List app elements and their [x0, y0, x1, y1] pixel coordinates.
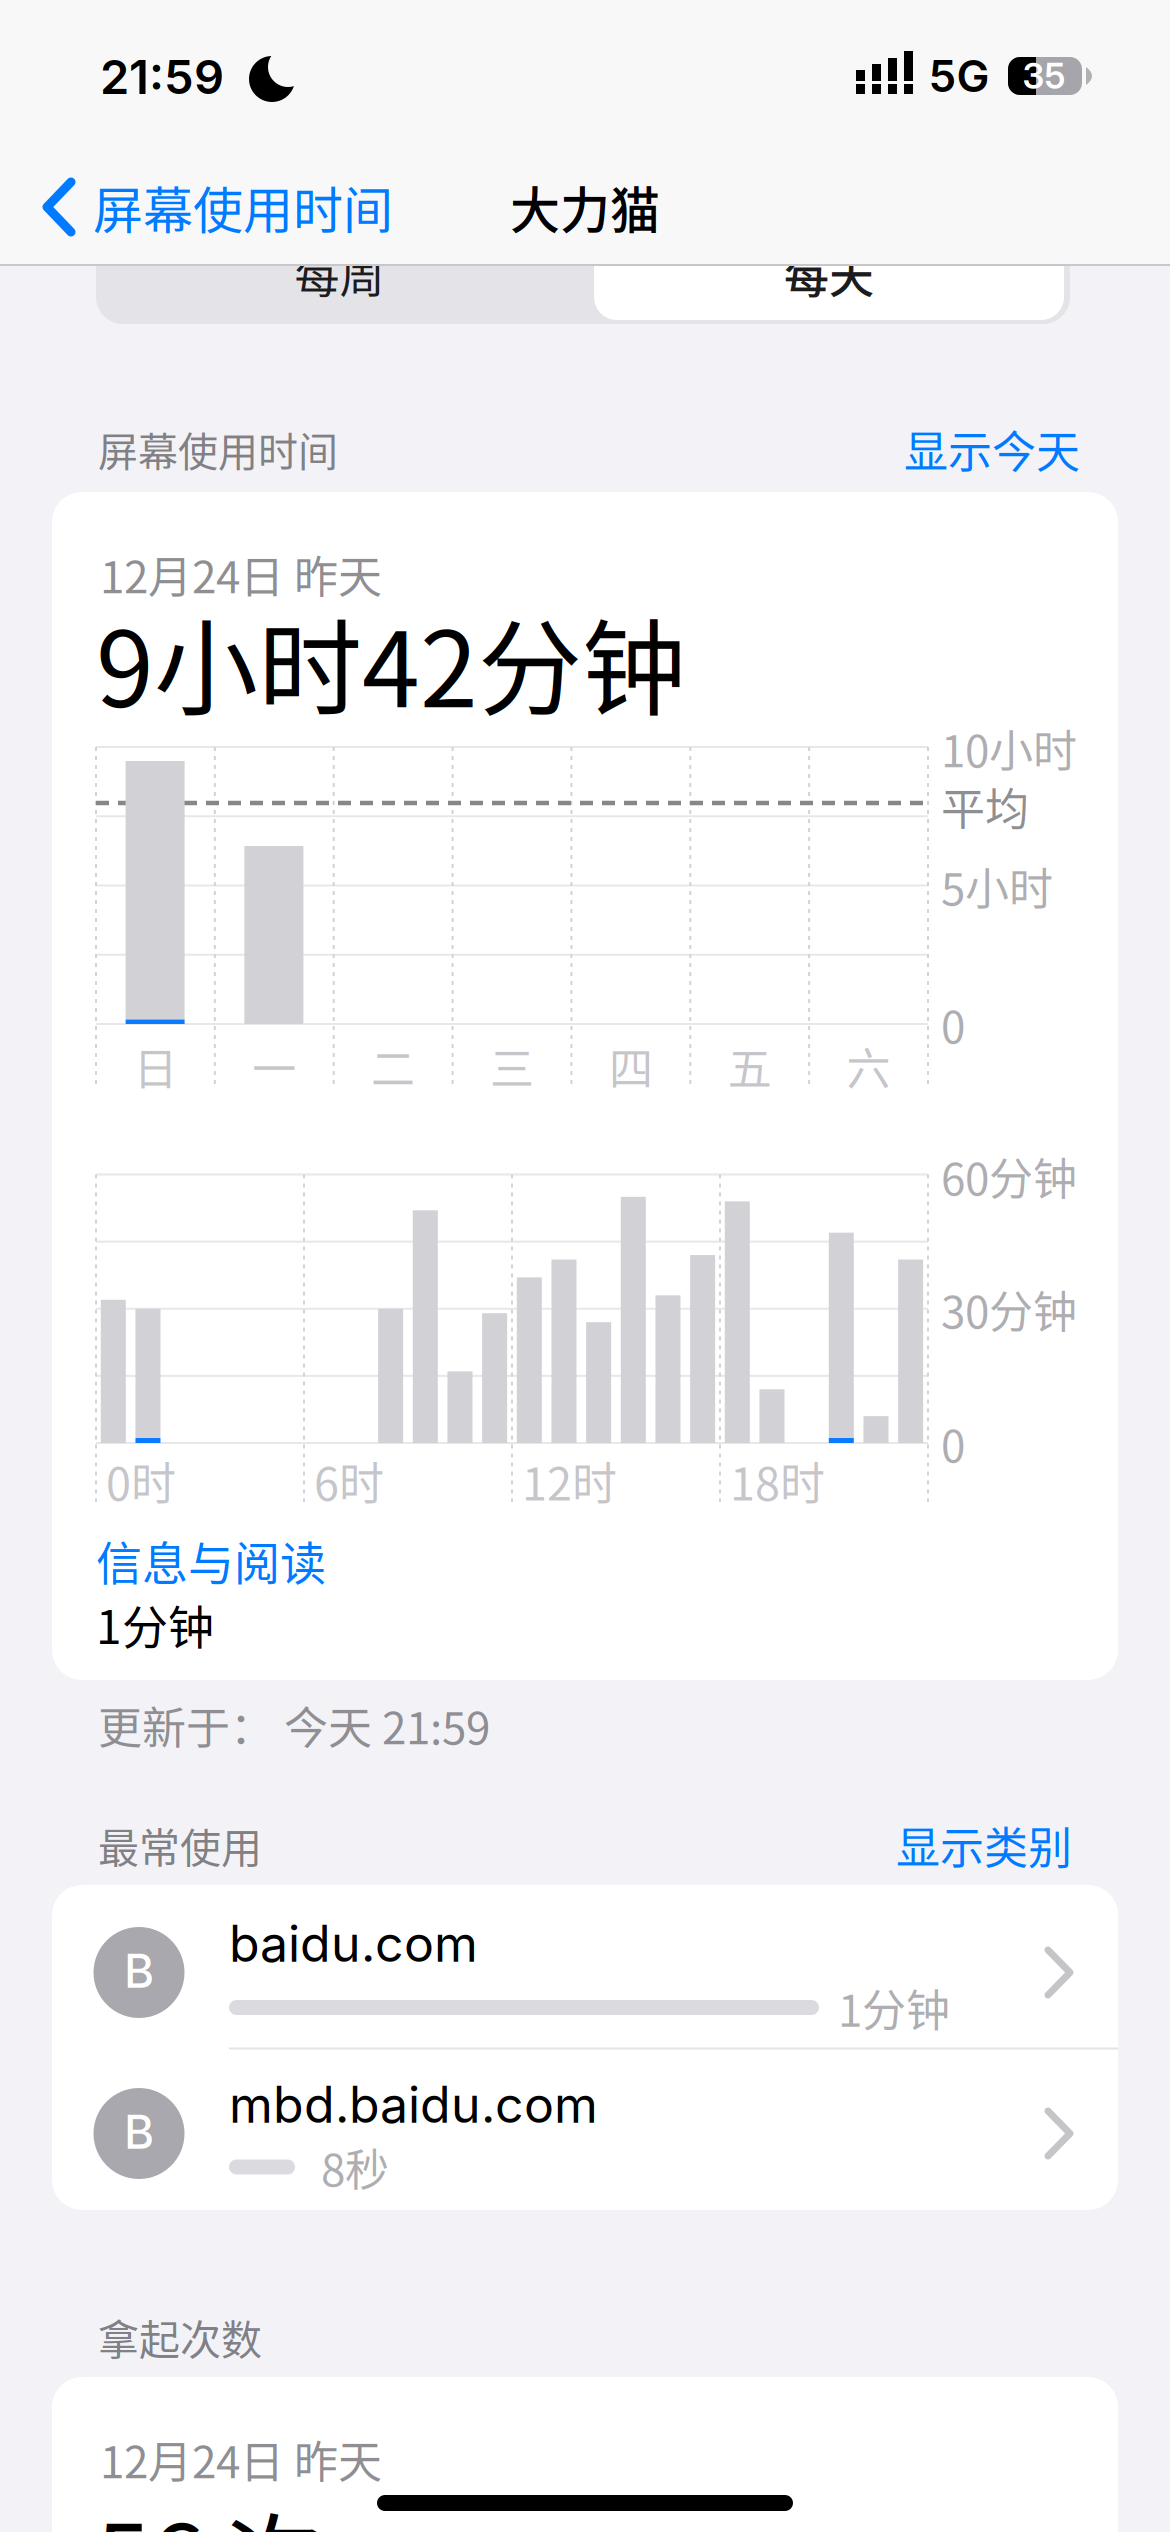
staticText: 12月24日 昨天 [100, 542, 382, 606]
staticText: 屏幕使用时间 [93, 171, 393, 243]
staticText: 0 [941, 1411, 965, 1475]
staticText: 9小时42分钟 [96, 587, 686, 737]
staticText: 大力猫 [510, 171, 660, 243]
button[interactable]: 每周 [96, 224, 583, 324]
staticText: 最常使用 [98, 1815, 262, 1875]
staticText: 二 [371, 1034, 415, 1098]
staticText: 1分钟 [96, 1591, 214, 1657]
staticText: 每周 [294, 241, 384, 307]
staticText: 5G [928, 49, 989, 103]
staticText: 30分钟 [941, 1277, 1077, 1341]
staticText: 更新于： 今天 21:59 [98, 1693, 490, 1757]
staticText: baidu.com [229, 1913, 478, 1974]
button[interactable]: 显示今天 [904, 417, 1080, 481]
staticText: 一 [252, 1034, 296, 1098]
staticText: 0 [941, 992, 965, 1056]
staticText: 六 [847, 1034, 891, 1098]
staticText: 56 次 [96, 2482, 324, 2532]
staticText: 1分钟 [838, 1976, 950, 2039]
staticText: 显示类别 [896, 1813, 1072, 1877]
staticText: 8秒 [321, 2135, 389, 2199]
staticText: 四 [609, 1034, 653, 1098]
staticText: 三 [490, 1034, 534, 1098]
staticText: 10小时 [941, 716, 1077, 780]
staticText: B [124, 1943, 154, 1999]
staticText: 日 [133, 1034, 177, 1098]
staticText: 平均 [941, 774, 1029, 838]
staticText: 12时 [522, 1448, 617, 1514]
button[interactable]: 屏幕使用时间 [45, 171, 393, 243]
staticText: 21:59 [100, 49, 224, 105]
staticText: 35 [1022, 55, 1065, 97]
button[interactable]: B [52, 2049, 1118, 2210]
staticText: 信息与阅读 [96, 1527, 326, 1593]
staticText: 屏幕使用时间 [98, 420, 338, 478]
staticText: 12月24日 昨天 [100, 2427, 382, 2491]
button[interactable]: 显示类别 [896, 1813, 1072, 1877]
staticText: 5小时 [941, 854, 1053, 918]
staticText: B [124, 2104, 154, 2160]
staticText: 60分钟 [941, 1144, 1077, 1208]
staticText: 6时 [314, 1448, 384, 1514]
staticText: 五 [728, 1034, 772, 1098]
staticText: mbd.baidu.com [229, 2074, 598, 2135]
button[interactable]: B [52, 1885, 1118, 2048]
staticText: 0时 [106, 1448, 176, 1514]
button[interactable]: 每天 [594, 228, 1064, 320]
staticText: 18时 [730, 1448, 825, 1514]
staticText: 每天 [784, 241, 874, 307]
staticText: 拿起次数 [98, 2307, 262, 2367]
button[interactable]: 信息与阅读 [96, 1527, 326, 1593]
staticText: 显示今天 [904, 417, 1080, 481]
